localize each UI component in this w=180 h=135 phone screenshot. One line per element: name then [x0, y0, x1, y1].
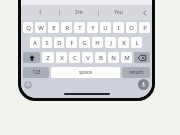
staticText: R — [65, 24, 69, 32]
button[interactable]: P — [139, 22, 150, 33]
staticText: K — [122, 39, 126, 47]
button[interactable]: space — [51, 67, 120, 78]
staticText: space — [79, 69, 92, 76]
staticText: V — [86, 54, 90, 62]
staticText: T — [78, 24, 82, 32]
button[interactable]: L — [131, 37, 142, 48]
staticText: P — [143, 24, 147, 32]
button[interactable]: U — [100, 22, 111, 33]
button[interactable]: S — [42, 37, 52, 48]
button[interactable]: M — [121, 52, 132, 63]
button[interactable]: N — [108, 52, 119, 63]
staticText: Q — [26, 24, 31, 32]
staticText: You — [114, 9, 123, 16]
staticText: S — [45, 39, 49, 47]
button[interactable]: return — [122, 67, 150, 78]
staticText: C — [73, 54, 77, 62]
button[interactable]: I'm — [60, 5, 98, 20]
staticText: F — [70, 39, 74, 47]
button[interactable]: A — [30, 37, 40, 48]
staticText: M — [124, 54, 130, 62]
button[interactable]: Emoji — [24, 81, 32, 89]
button[interactable]: J — [105, 37, 116, 48]
button[interactable]: Q — [23, 22, 33, 33]
staticText: return — [129, 69, 144, 76]
staticText: I — [117, 24, 120, 32]
staticText: W — [38, 24, 44, 32]
button[interactable]: Z — [42, 52, 54, 63]
button[interactable]: Dictate — [138, 79, 149, 90]
button[interactable]: K — [118, 37, 129, 48]
staticText: Z — [46, 54, 50, 62]
button[interactable]: E — [48, 22, 59, 33]
staticText: L — [135, 39, 139, 47]
staticText: X — [60, 54, 64, 62]
staticText: B — [99, 54, 103, 62]
staticText: G — [82, 39, 87, 47]
button[interactable]: F — [66, 37, 77, 48]
staticText: I'm — [75, 9, 83, 16]
staticText: U — [103, 24, 108, 32]
button[interactable]: C — [69, 52, 80, 63]
staticText: N — [111, 54, 116, 62]
button[interactable]: R — [61, 22, 72, 33]
button[interactable]: Hide predictions — [137, 5, 152, 20]
button[interactable]: I — [113, 22, 124, 33]
button[interactable]: D — [54, 37, 64, 48]
staticText: D — [57, 39, 62, 47]
button[interactable]: T — [74, 22, 85, 33]
button[interactable]: O — [126, 22, 137, 33]
button[interactable]: Backspace — [134, 52, 150, 63]
button[interactable]: W — [35, 22, 46, 33]
staticText: H — [95, 39, 100, 47]
button[interactable]: V — [82, 52, 93, 63]
button[interactable]: Shift — [23, 52, 40, 63]
button[interactable]: G — [79, 37, 90, 48]
button[interactable]: Y — [87, 22, 98, 33]
staticText: 123 — [32, 69, 41, 76]
button[interactable]: 123 — [23, 67, 49, 78]
staticText: Y — [91, 24, 95, 32]
staticText: E — [52, 24, 56, 32]
button[interactable]: You — [99, 5, 137, 20]
button[interactable]: I — [21, 5, 59, 20]
button[interactable]: B — [95, 52, 106, 63]
staticText: J — [110, 39, 112, 47]
staticText: I — [39, 9, 41, 16]
staticText: O — [129, 24, 134, 32]
button[interactable]: H — [92, 37, 103, 48]
button[interactable]: X — [56, 52, 67, 63]
staticText: A — [33, 39, 37, 47]
